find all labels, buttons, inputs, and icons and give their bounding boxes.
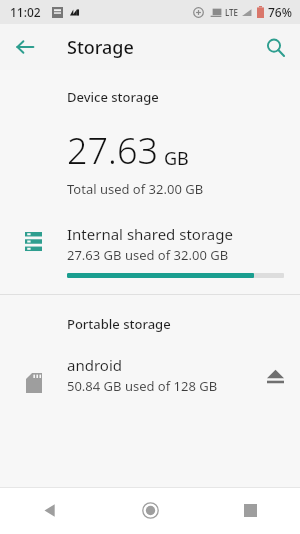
button[interactable]: Back <box>0 487 100 534</box>
staticText: LTE <box>225 7 239 18</box>
staticText: Total used of 32.00 GB <box>67 180 204 198</box>
staticText: Storage <box>67 35 134 60</box>
button[interactable]: Eject <box>250 369 300 384</box>
staticText: Internal shared storage <box>67 224 233 244</box>
staticText: GB <box>164 146 189 171</box>
staticText: 27.63 <box>67 126 159 175</box>
staticText: android <box>67 355 122 375</box>
staticText: 50.84 GB used of 128 GB <box>67 377 218 395</box>
button[interactable]: Back <box>8 30 42 64</box>
button[interactable]: Internal shared storage <box>0 224 300 278</box>
staticText: 27.63 GB used of 32.00 GB <box>67 246 229 264</box>
staticText: 76% <box>268 4 292 20</box>
button[interactable]: Home <box>100 487 200 534</box>
button[interactable]: android <box>0 355 300 395</box>
button[interactable]: Search <box>258 30 292 64</box>
staticText: Portable storage <box>67 315 171 333</box>
staticText: Device storage <box>67 88 159 106</box>
staticText: 11:02 <box>10 4 41 20</box>
button[interactable]: Recents <box>200 487 300 534</box>
